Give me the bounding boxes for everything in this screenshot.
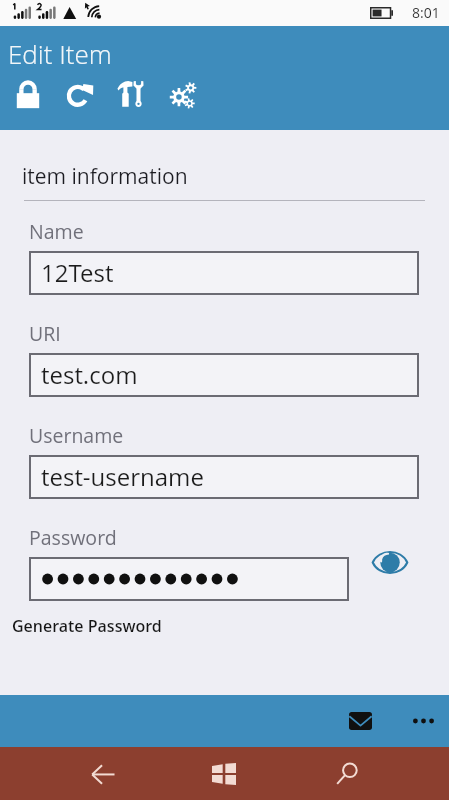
button[interactable]: Refresh [62, 77, 98, 113]
button[interactable]: Home [209, 747, 238, 800]
staticText: Name [29, 218, 84, 245]
button[interactable]: Show password [370, 542, 410, 582]
button[interactable]: test-username [29, 455, 419, 499]
button[interactable]: Email [338, 695, 382, 747]
button[interactable]: Settings [165, 77, 201, 113]
button[interactable]: Lock [10, 77, 46, 113]
staticText: test-username [41, 460, 204, 493]
staticText: Username [29, 422, 124, 449]
staticText: Password [29, 524, 117, 551]
button[interactable]: Tools [113, 77, 149, 113]
staticText: Generate Password [12, 615, 162, 637]
staticText: URI [29, 320, 61, 347]
button[interactable]: Generate Password [10, 613, 164, 639]
button[interactable] [29, 557, 349, 601]
staticText: 8:01 [412, 3, 440, 22]
button[interactable]: Back [88, 747, 117, 800]
staticText: 12Test [41, 256, 114, 289]
button[interactable]: More options [401, 695, 445, 747]
button[interactable]: 12Test [29, 251, 419, 295]
staticText: test.com [41, 358, 138, 391]
button[interactable]: test.com [29, 353, 419, 397]
button[interactable]: Search [332, 747, 361, 800]
staticText: Edit Item [8, 36, 112, 71]
staticText: item information [22, 162, 188, 191]
